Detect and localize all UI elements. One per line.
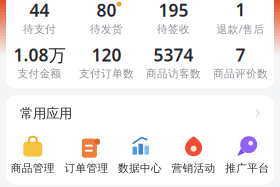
button[interactable]: 1.08万: [6, 43, 73, 80]
staticText: 退款/售后: [216, 22, 264, 36]
button[interactable]: 120: [73, 43, 140, 80]
staticText: 待发货: [90, 22, 123, 36]
staticText: 商品访客数: [146, 67, 201, 80]
staticText: 数据中心: [118, 162, 162, 175]
button[interactable]: 195: [140, 0, 207, 36]
staticText: 营销活动: [172, 162, 216, 175]
button[interactable]: 80: [73, 0, 140, 36]
staticText: 支付订单数: [79, 67, 134, 80]
staticText: 80: [96, 0, 116, 21]
button[interactable]: 商品管理: [6, 135, 60, 175]
staticText: 商品管理: [11, 162, 55, 175]
staticText: 推广平台: [225, 162, 269, 175]
button[interactable]: 5374: [140, 43, 207, 80]
staticText: 1.08万: [13, 43, 65, 66]
staticText: 商品评价数: [213, 67, 268, 80]
staticText: 1: [235, 0, 245, 21]
button[interactable]: 7: [207, 43, 274, 80]
staticText: 待签收: [157, 22, 190, 36]
staticText: 支付金额: [17, 67, 61, 80]
staticText: 44: [29, 0, 49, 21]
button[interactable]: 1: [207, 0, 274, 36]
staticText: 195: [158, 0, 188, 21]
button[interactable]: 数据中心: [113, 135, 167, 175]
staticText: 常用应用: [20, 105, 72, 122]
button[interactable]: 常用应用: [6, 95, 274, 135]
staticText: 7: [235, 43, 245, 66]
staticText: 120: [91, 43, 121, 66]
staticText: 待支付: [23, 22, 56, 36]
staticText: 订单管理: [64, 162, 108, 175]
staticText: 5374: [153, 43, 193, 66]
button[interactable]: 营销活动: [167, 135, 220, 175]
button[interactable]: 订单管理: [60, 135, 113, 175]
button[interactable]: 推广平台: [220, 135, 274, 175]
button[interactable]: 44: [6, 0, 73, 36]
